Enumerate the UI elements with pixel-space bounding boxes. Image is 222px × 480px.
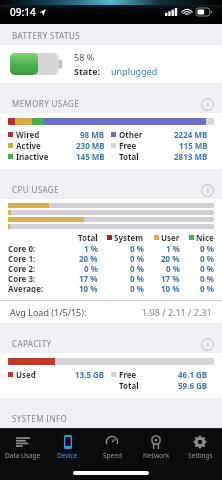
- staticText: 2813 MB: [174, 151, 208, 162]
- staticText: Device: [57, 451, 78, 460]
- staticText: Total: [119, 380, 139, 391]
- staticText: 46.1 GB: [178, 369, 208, 380]
- button[interactable]: Settings: [178, 429, 222, 466]
- staticText: 2224 MB: [174, 129, 208, 140]
- staticText: Speed: [103, 451, 122, 460]
- staticText: 115 MB: [179, 140, 208, 151]
- staticText: 98 MB: [80, 129, 105, 140]
- staticText: 17 %: [161, 273, 180, 283]
- staticText: SYSTEM INFO: [12, 413, 68, 424]
- staticText: Used: [16, 369, 36, 380]
- staticText: Total: [78, 232, 98, 243]
- staticText: Free: [119, 369, 137, 380]
- staticText: 20 %: [79, 253, 98, 263]
- staticText: Settings: [188, 451, 213, 460]
- staticText: 0 %: [200, 283, 214, 293]
- staticText: 17 %: [79, 273, 98, 283]
- staticText: unplugged: [111, 65, 158, 77]
- staticText: 1 %: [166, 243, 180, 253]
- button[interactable]: Memory usage info: [201, 98, 214, 111]
- staticText: 10 %: [161, 283, 180, 293]
- staticText: Nice: [196, 232, 214, 243]
- staticText: Other: [119, 129, 143, 140]
- staticText: Active: [16, 140, 41, 151]
- staticText: Core 0:: [8, 243, 36, 253]
- button[interactable]: Capacity info: [201, 338, 214, 351]
- staticText: i: [207, 340, 209, 350]
- staticText: 0 %: [84, 263, 98, 273]
- staticText: 0 %: [130, 263, 144, 273]
- staticText: Network: [143, 451, 170, 460]
- staticText: CAPACITY: [12, 338, 52, 349]
- staticText: Data Usage: [5, 451, 41, 460]
- staticText: 0 %: [130, 253, 144, 263]
- staticText: 0 %: [200, 273, 214, 283]
- staticText: i: [207, 100, 209, 110]
- staticText: Core 1:: [8, 253, 36, 263]
- button[interactable]: Network: [134, 429, 178, 466]
- staticText: MEMORY USAGE: [12, 98, 80, 109]
- staticText: Average:: [8, 283, 44, 293]
- staticText: 145 MB: [76, 151, 105, 162]
- button[interactable]: Speed: [90, 429, 134, 466]
- button[interactable]: Data Usage: [0, 429, 45, 466]
- button[interactable]: CPU usage info: [201, 184, 214, 197]
- button[interactable]: Device: [45, 429, 90, 466]
- staticText: 09:14: [10, 5, 36, 19]
- staticText: 0 %: [200, 253, 214, 263]
- staticText: 230 MB: [76, 140, 105, 151]
- staticText: 13.5 GB: [75, 369, 105, 380]
- staticText: i: [207, 186, 209, 196]
- staticText: CPU USAGE: [12, 184, 59, 195]
- staticText: System: [114, 232, 144, 243]
- staticText: Core 2:: [8, 263, 36, 273]
- staticText: 0 %: [130, 273, 144, 283]
- staticText: 0 %: [200, 243, 214, 253]
- staticText: Core 3:: [8, 273, 36, 283]
- staticText: 0 %: [200, 263, 214, 273]
- staticText: 59.6 GB: [178, 380, 208, 391]
- staticText: 0 %: [130, 243, 144, 253]
- staticText: Wired: [16, 129, 40, 140]
- staticText: BATTERY STATUS: [12, 30, 80, 41]
- staticText: Free: [119, 140, 137, 151]
- staticText: User: [161, 232, 180, 243]
- staticText: 1 %: [84, 243, 98, 253]
- staticText: Avg Load (1/5/15):: [10, 306, 87, 318]
- staticText: 0 %: [130, 283, 144, 293]
- staticText: 0 %: [166, 263, 180, 273]
- staticText: 10 %: [79, 283, 98, 293]
- staticText: 20 %: [161, 253, 180, 263]
- staticText: Total: [119, 151, 139, 162]
- staticText: State:: [74, 65, 101, 77]
- staticText: Inactive: [16, 151, 49, 162]
- staticText: 1.98 / 2.11 / 2.31: [142, 306, 212, 318]
- staticText: 58 %: [74, 51, 95, 63]
